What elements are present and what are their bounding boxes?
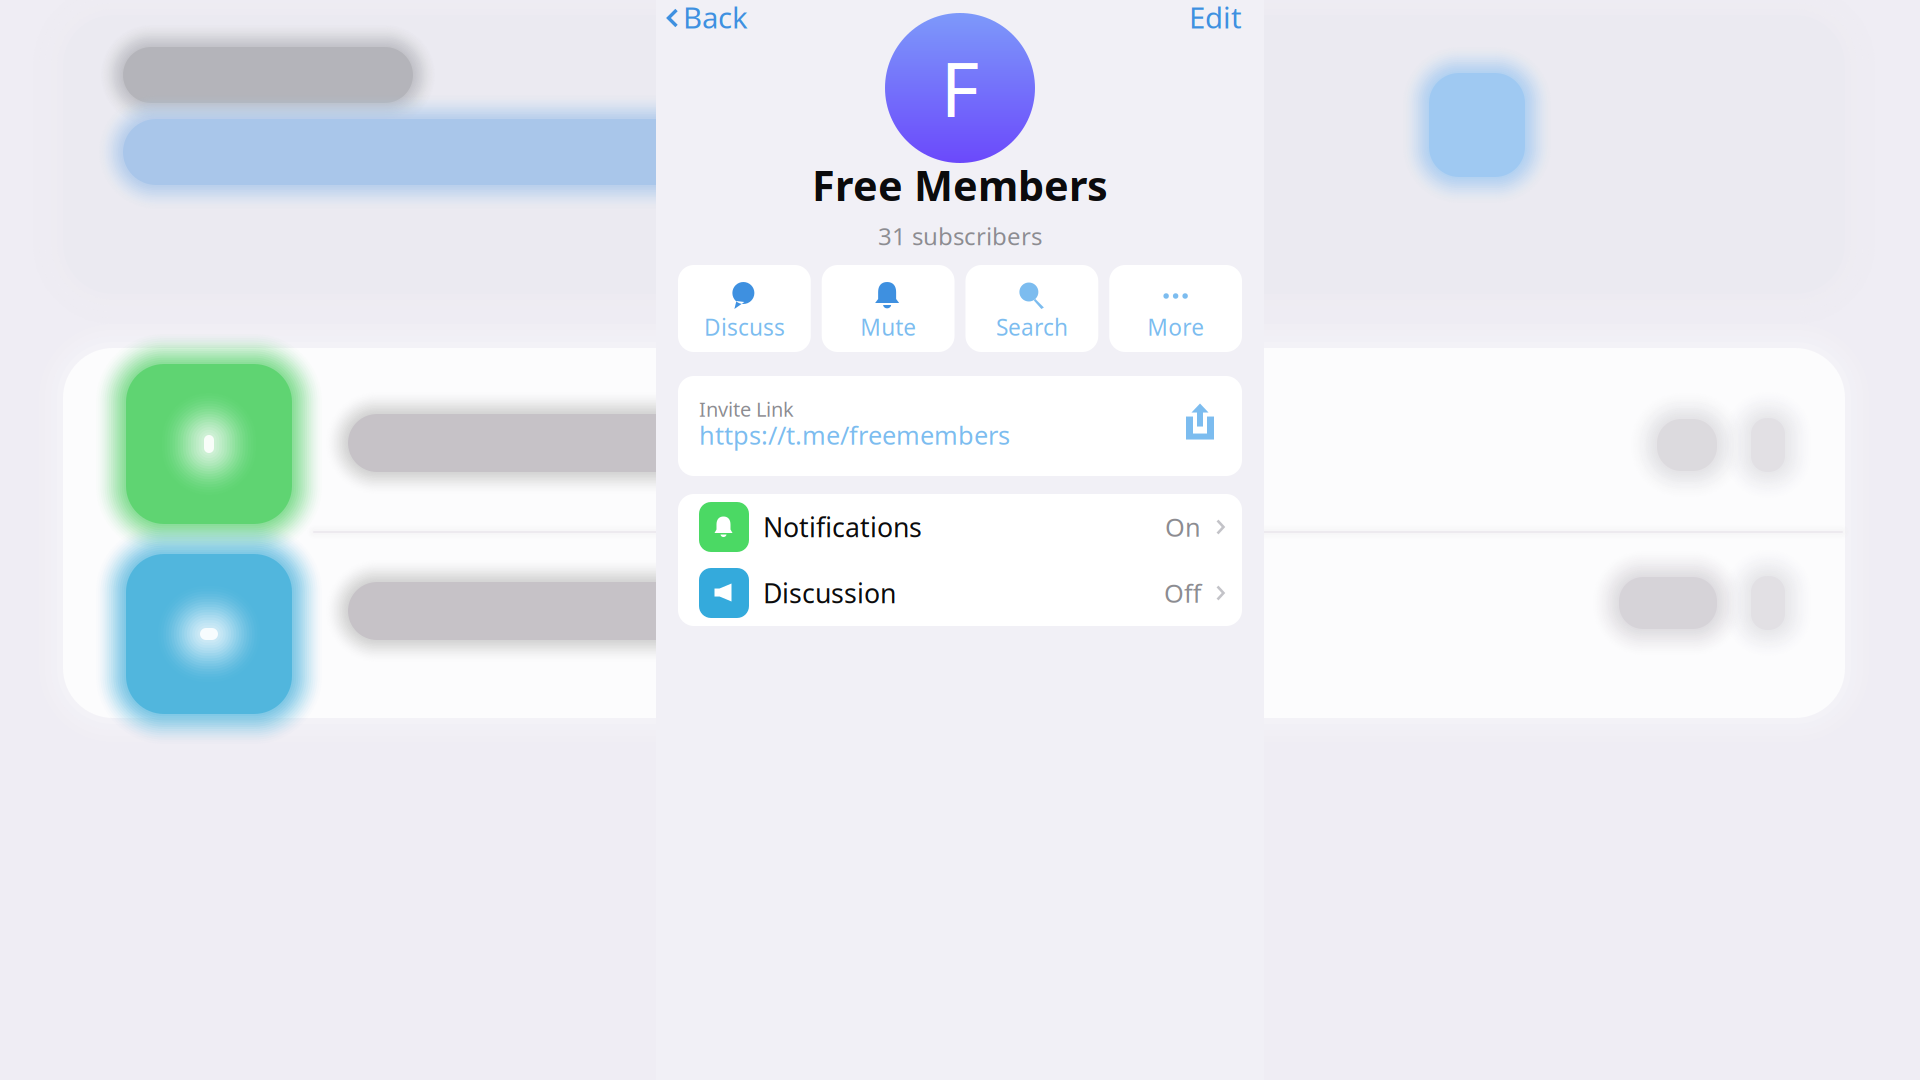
staticText: Invite Link xyxy=(699,396,794,422)
button[interactable]: Back xyxy=(656,0,760,38)
staticText: Discuss xyxy=(704,312,785,342)
staticText: Notifications xyxy=(763,509,922,545)
button[interactable]: Mute xyxy=(822,265,955,352)
staticText: Free Members xyxy=(812,158,1108,212)
staticText: Off xyxy=(1164,576,1201,610)
button[interactable]: Discussion xyxy=(678,560,1242,626)
staticText: More xyxy=(1147,312,1204,342)
button[interactable]: Edit xyxy=(1177,0,1264,38)
staticText: On xyxy=(1165,510,1201,544)
button[interactable]: Invite Link xyxy=(678,376,1242,476)
staticText: Edit xyxy=(1189,0,1242,36)
staticText: https://t.me/freemembers xyxy=(699,418,1010,452)
staticText: 31 subscribers xyxy=(878,220,1042,252)
staticText: Back xyxy=(683,0,748,36)
button[interactable]: Discuss xyxy=(678,265,811,352)
button[interactable]: More xyxy=(1109,265,1242,352)
staticText: F xyxy=(940,38,979,138)
staticText: Discussion xyxy=(763,575,896,611)
staticText: Search xyxy=(996,312,1068,342)
staticText: Mute xyxy=(860,312,916,342)
button[interactable]: Notifications xyxy=(678,494,1242,560)
button[interactable]: Search xyxy=(965,265,1098,352)
